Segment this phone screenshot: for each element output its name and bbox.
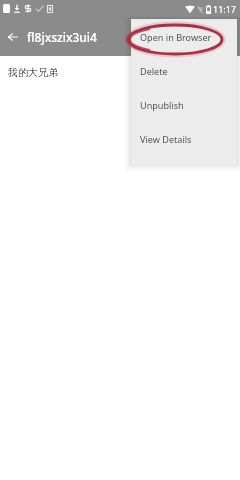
button[interactable]: Open in Browser bbox=[131, 20, 237, 54]
staticText: Open in Browser bbox=[140, 31, 212, 43]
button[interactable]: Delete bbox=[131, 54, 237, 88]
staticText: 我的大兄弟 bbox=[8, 66, 58, 79]
button[interactable]: Unpublish bbox=[131, 88, 237, 122]
staticText: 11:17 bbox=[213, 3, 237, 15]
button[interactable]: View Details bbox=[131, 122, 237, 156]
staticText: Unpublish bbox=[140, 99, 184, 111]
staticText: Delete bbox=[140, 65, 168, 77]
staticText: View Details bbox=[140, 133, 192, 145]
button[interactable]: Back bbox=[0, 24, 25, 50]
staticText: fl8jxszix3ui4 bbox=[27, 29, 97, 45]
